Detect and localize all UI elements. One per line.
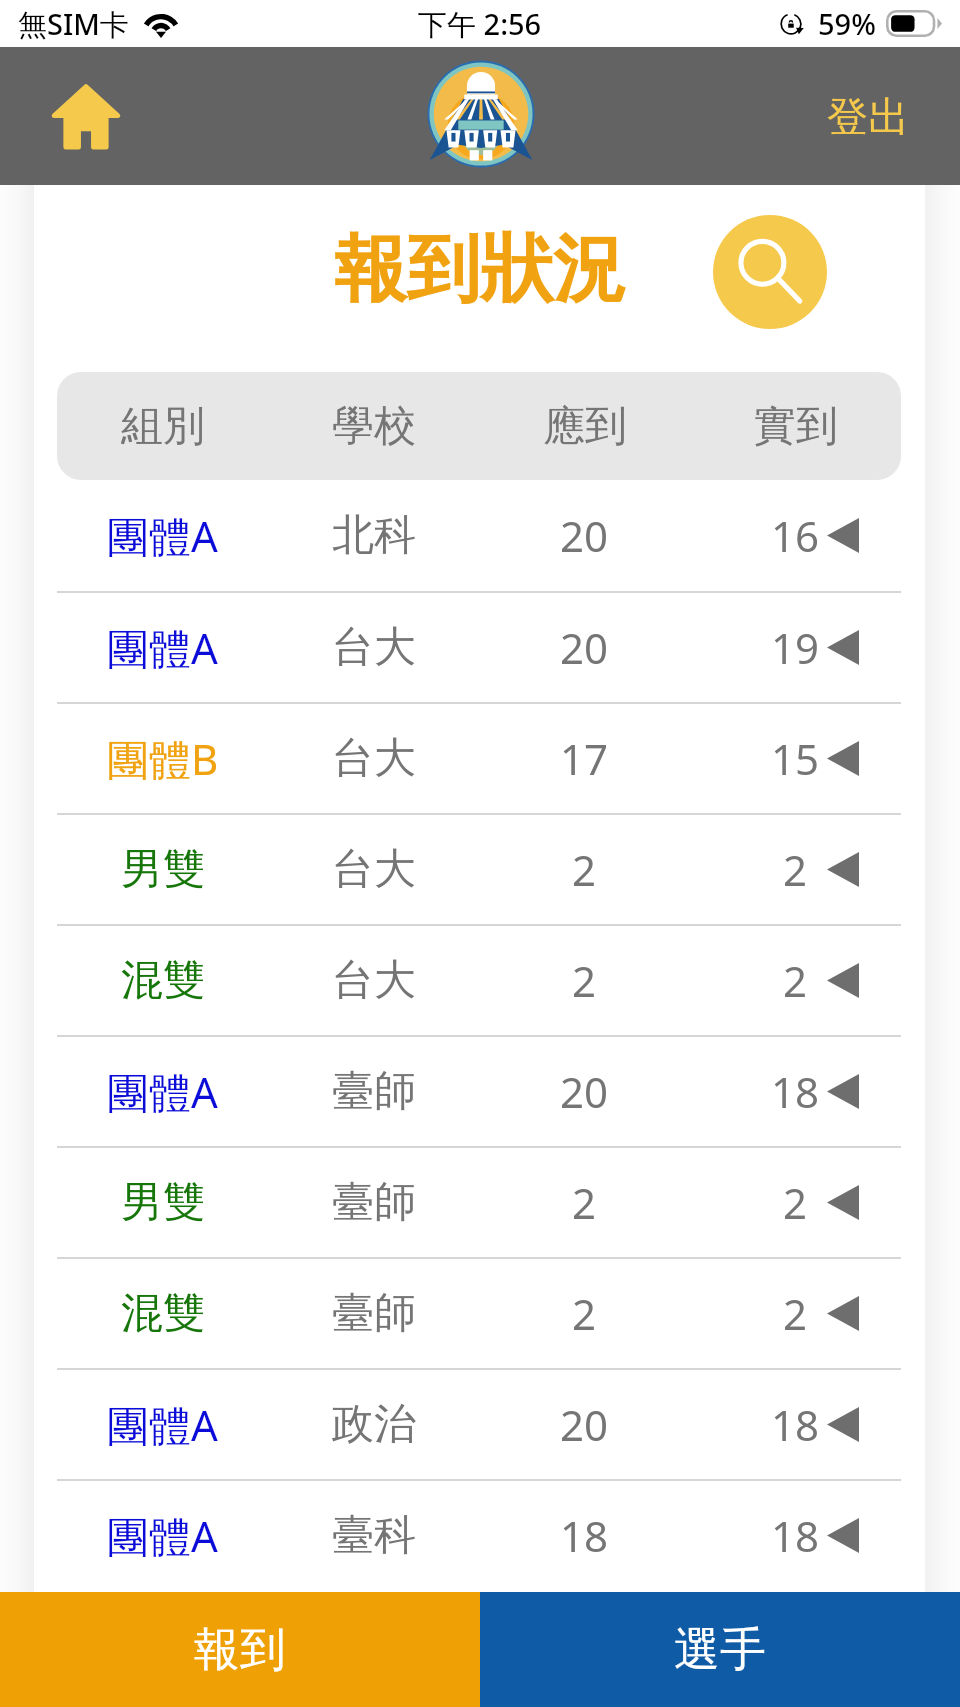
staticText: 團體B [107,730,219,787]
staticText: 下午 2:56 [418,4,542,44]
staticText: 臺師 [332,1287,416,1340]
staticText: 18 [771,1396,820,1453]
button[interactable]: 選手 [480,1592,960,1707]
staticText: 2 [783,1174,808,1231]
staticText: 臺科 [332,1509,416,1562]
staticText: 2 [572,1285,597,1342]
staticText: 團體A [107,1396,218,1453]
staticText: 團體A [107,619,218,676]
staticText: 59% [818,4,876,43]
staticText: 學校 [332,400,416,453]
staticText: 18 [771,1063,820,1120]
staticText: 15 [771,730,820,787]
staticText: 台大 [332,843,416,896]
staticText: 18 [771,1507,820,1564]
staticText: 2 [783,952,808,1009]
staticText: 團體A [107,1063,218,1120]
staticText: 組別 [121,400,205,453]
button[interactable]: 團體B [34,704,925,813]
staticText: 報到狀況 [334,224,626,316]
button[interactable]: 報到 [0,1592,480,1707]
staticText: 20 [560,1396,609,1453]
staticText: 18 [560,1507,609,1564]
button[interactable]: 男雙 [34,815,925,924]
staticText: 台大 [332,954,416,1007]
staticText: 20 [560,1063,609,1120]
staticText: 16 [771,507,820,564]
button[interactable]: Home [45,75,127,157]
button[interactable]: 登出 [816,80,920,156]
staticText: 政治 [332,1398,416,1451]
staticText: 登出 [827,92,909,144]
button[interactable]: 團體A [34,1037,925,1146]
staticText: 19 [771,619,820,676]
staticText: 臺師 [332,1065,416,1118]
staticText: 2 [783,841,808,898]
staticText: 2 [783,1285,808,1342]
staticText: 選手 [674,1621,766,1679]
staticText: 2 [572,841,597,898]
staticText: 台大 [332,621,416,674]
staticText: 20 [560,619,609,676]
staticText: 20 [560,507,609,564]
button[interactable]: 團體A [34,480,925,591]
button[interactable]: 混雙 [34,1259,925,1368]
staticText: 2 [572,952,597,1009]
staticText: 北科 [332,509,416,562]
staticText: 實到 [754,400,838,453]
button[interactable]: 團體A [34,1481,925,1590]
button[interactable]: 團體A [34,593,925,702]
button[interactable]: 男雙 [34,1148,925,1257]
staticText: 團體A [107,1507,218,1564]
staticText: 男雙 [121,1176,205,1229]
staticText: 17 [560,730,609,787]
staticText: 臺師 [332,1176,416,1229]
staticText: 男雙 [121,843,205,896]
staticText: 無SIM卡 [18,4,129,44]
staticText: 2 [572,1174,597,1231]
button[interactable]: 混雙 [34,926,925,1035]
staticText: 台大 [332,732,416,785]
staticText: 團體A [107,507,218,564]
staticText: 報到 [194,1621,286,1679]
staticText: 應到 [543,400,627,453]
staticText: 混雙 [121,954,205,1007]
button[interactable]: 團體A [34,1370,925,1479]
staticText: 混雙 [121,1287,205,1340]
button[interactable]: Search [713,215,827,329]
